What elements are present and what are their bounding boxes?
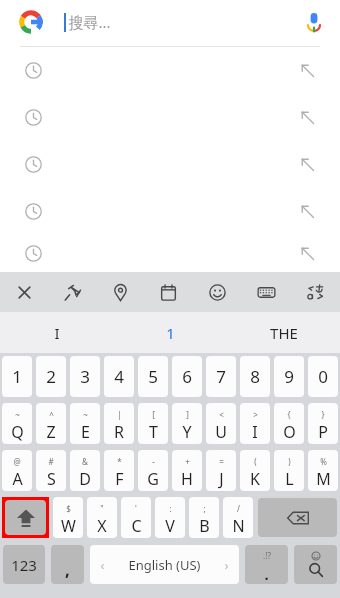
staticText: Z — [46, 421, 56, 443]
staticText: { — [287, 409, 291, 420]
button[interactable]: 3 — [70, 356, 100, 397]
button[interactable]: ) — [274, 450, 304, 491]
button[interactable]: Backspace — [258, 498, 337, 537]
button[interactable]: ; — [189, 497, 219, 538]
staticText: = — [219, 456, 224, 467]
staticText: K — [250, 468, 260, 490]
button[interactable]: Clipboard — [48, 272, 96, 312]
button[interactable]: | — [104, 403, 134, 444]
button[interactable] — [0, 94, 340, 141]
staticText: % — [320, 456, 327, 467]
staticText: " — [100, 503, 104, 514]
staticText: 2 — [46, 365, 56, 388]
button[interactable]: : — [155, 497, 185, 538]
button[interactable]: 7 — [206, 356, 236, 397]
button[interactable]: 4 — [104, 356, 134, 397]
button[interactable]: ] — [172, 403, 202, 444]
button[interactable]: Keyboard settings — [242, 272, 291, 312]
button[interactable]: } — [308, 403, 338, 444]
staticText: V — [165, 515, 175, 537]
staticText: ~ — [83, 409, 88, 420]
staticText: THE — [270, 323, 298, 343]
button[interactable]: Shift — [5, 500, 46, 535]
staticText: ' — [135, 503, 137, 514]
button[interactable]: 1 — [114, 312, 227, 353]
button[interactable]: ‹ — [90, 545, 239, 584]
button[interactable]: * — [104, 450, 134, 491]
button[interactable]: ' — [121, 497, 151, 538]
staticText: E — [81, 421, 90, 443]
staticText: 123 — [11, 555, 37, 575]
staticText: } — [321, 409, 325, 420]
staticText: X — [97, 515, 107, 537]
button[interactable]: Voice search — [294, 2, 334, 42]
button[interactable]: [ — [138, 403, 168, 444]
button[interactable]: THE — [227, 312, 340, 353]
button[interactable]: 1 — [2, 356, 32, 397]
staticText: : — [169, 503, 172, 514]
staticText: C — [131, 515, 142, 537]
button[interactable]: 8 — [240, 356, 270, 397]
button[interactable]: Translate — [291, 272, 340, 312]
staticText: T — [149, 421, 158, 443]
button[interactable]: Location — [96, 272, 144, 312]
button[interactable]: Google — [18, 9, 44, 35]
staticText: › — [224, 556, 229, 574]
staticText: ; — [203, 503, 206, 514]
staticText: ( — [254, 456, 257, 467]
staticText: 0 — [318, 365, 328, 388]
button[interactable]: , — [51, 545, 84, 584]
button[interactable]: 0 — [308, 356, 338, 397]
button[interactable]: Emoji — [193, 272, 242, 312]
button[interactable]: > — [240, 403, 270, 444]
staticText: 9 — [284, 365, 294, 388]
button[interactable]: I — [0, 312, 114, 353]
staticText: B — [199, 515, 210, 537]
button[interactable]: / — [223, 497, 253, 538]
button[interactable]: ( — [240, 450, 270, 491]
button[interactable]: { — [274, 403, 304, 444]
staticText: O — [283, 421, 296, 443]
button[interactable]: % — [308, 450, 338, 491]
staticText: > — [253, 409, 258, 420]
button[interactable]: # — [36, 450, 66, 491]
staticText: 4 — [114, 365, 124, 388]
button[interactable]: ~ — [2, 403, 32, 444]
button[interactable]: .!? — [245, 545, 288, 584]
button[interactable]: @ — [2, 450, 32, 491]
button[interactable]: ^ — [36, 403, 66, 444]
button[interactable] — [0, 188, 340, 235]
button[interactable]: + — [172, 450, 202, 491]
button[interactable]: 5 — [138, 356, 168, 397]
staticText: 7 — [216, 365, 226, 388]
button[interactable] — [0, 141, 340, 188]
staticText: R — [114, 421, 124, 443]
button[interactable]: = — [206, 450, 236, 491]
staticText: / — [237, 503, 240, 514]
staticText: + — [185, 456, 190, 467]
staticText: 1 — [166, 323, 175, 343]
button[interactable]: " — [87, 497, 117, 538]
button[interactable]: 9 — [274, 356, 304, 397]
button[interactable] — [0, 235, 340, 272]
staticText: I — [252, 421, 258, 443]
staticText: * — [117, 456, 122, 467]
button[interactable]: ~ — [70, 403, 100, 444]
button[interactable]: 6 — [172, 356, 202, 397]
button[interactable]: Search — [294, 545, 337, 584]
staticText: W — [61, 515, 76, 537]
button[interactable]: $ — [53, 497, 83, 538]
staticText: , — [65, 558, 70, 581]
button[interactable]: Calendar — [144, 272, 193, 312]
staticText: I — [54, 323, 60, 343]
button[interactable]: Close — [0, 272, 48, 312]
button[interactable]: & — [70, 450, 100, 491]
button[interactable]: - — [138, 450, 168, 491]
button[interactable]: 2 — [36, 356, 66, 397]
staticText: 6 — [182, 365, 192, 388]
button[interactable]: < — [206, 403, 236, 444]
staticText: G — [147, 468, 159, 490]
button[interactable]: 123 — [3, 545, 45, 584]
staticText: English (US) — [128, 556, 201, 574]
button[interactable] — [0, 47, 340, 94]
